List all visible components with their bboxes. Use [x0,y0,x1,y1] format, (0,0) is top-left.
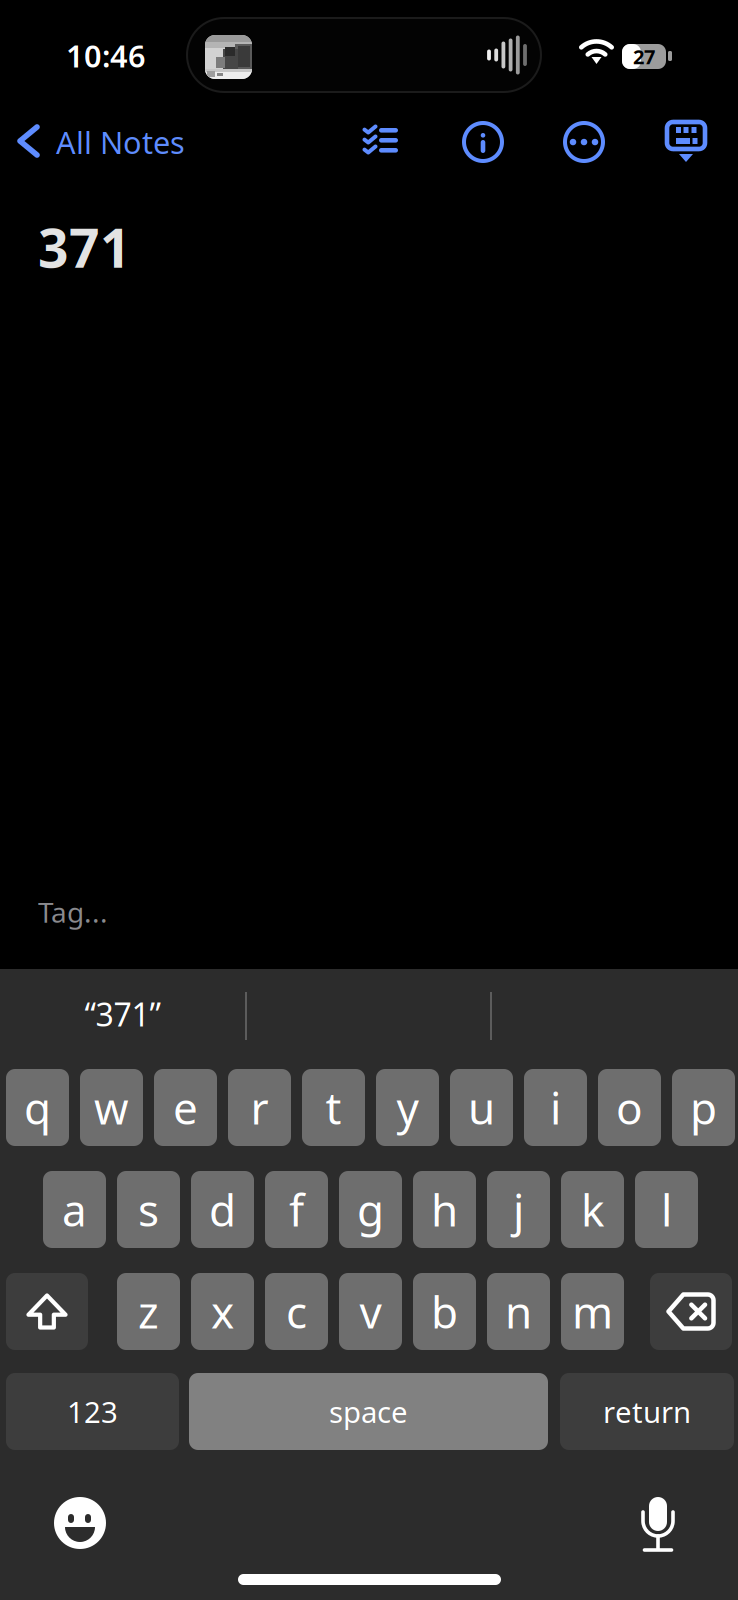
button[interactable]: More [552,110,616,174]
staticText: q [24,1078,51,1137]
staticText: a [62,1180,87,1239]
button[interactable]: b [413,1273,476,1350]
staticText: v [359,1282,381,1341]
button[interactable]: a [43,1171,106,1248]
staticText: 371 [38,212,131,282]
button[interactable]: n [487,1273,550,1350]
button[interactable]: h [413,1171,476,1248]
staticText: m [572,1282,613,1341]
staticText: s [138,1180,159,1239]
button[interactable]: i [524,1069,587,1146]
button[interactable]: w [80,1069,143,1146]
button[interactable]: “371” [0,974,245,1054]
staticText: Tag... [38,893,108,931]
staticText: j [513,1180,524,1239]
button[interactable]: Checklist [349,100,413,180]
staticText: d [209,1180,236,1239]
button[interactable]: l [635,1171,698,1248]
button[interactable]: Dictation [625,1491,689,1555]
staticText: 27 [633,43,655,70]
button[interactable]: Hide keyboard [654,110,718,174]
button[interactable]: e [154,1069,217,1146]
button[interactable]: k [561,1171,624,1248]
staticText: k [581,1180,604,1239]
button[interactable]: Space [189,1373,548,1450]
button[interactable]: o [598,1069,661,1146]
button[interactable]: v [339,1273,402,1350]
staticText: h [431,1180,458,1239]
staticText: p [690,1078,717,1137]
staticText: f [289,1180,304,1239]
button[interactable]: Emoji [48,1491,112,1555]
button[interactable]: q [6,1069,69,1146]
button[interactable]: All Notes [19,106,219,176]
button[interactable]: Shift [6,1273,88,1350]
button[interactable]: p [672,1069,735,1146]
button[interactable]: t [302,1069,365,1146]
button[interactable]: Tag... [0,888,738,936]
staticText: z [138,1282,159,1341]
staticText: l [661,1180,672,1239]
staticText: g [357,1180,384,1239]
staticText: return [603,1392,691,1431]
staticText: y [396,1078,418,1137]
staticText: r [250,1078,268,1137]
button[interactable]: z [117,1273,180,1350]
staticText: i [550,1078,561,1137]
button[interactable]: m [561,1273,624,1350]
button[interactable]: j [487,1171,550,1248]
staticText: t [325,1078,341,1137]
staticText: o [616,1078,643,1137]
staticText: w [94,1078,129,1137]
staticText: space [329,1392,408,1431]
button[interactable]: d [191,1171,254,1248]
staticText: u [468,1078,495,1137]
staticText: 123 [67,1392,118,1431]
staticText: 10:46 [66,35,146,76]
staticText: x [211,1282,234,1341]
button[interactable]: g [339,1171,402,1248]
button[interactable]: f [265,1171,328,1248]
button[interactable]: r [228,1069,291,1146]
button[interactable]: Note [0,206,738,906]
button[interactable]: Return [560,1373,734,1450]
staticText: n [505,1282,532,1341]
staticText: All Notes [56,122,185,162]
button[interactable]: Numbers [6,1373,179,1450]
staticText: “371” [84,993,160,1035]
staticText: c [286,1282,307,1341]
button[interactable]: x [191,1273,254,1350]
staticText: e [173,1078,198,1137]
button[interactable]: c [265,1273,328,1350]
button[interactable]: u [450,1069,513,1146]
button[interactable]: Info [451,110,515,174]
button[interactable]: Delete [650,1273,732,1350]
staticText: b [431,1282,458,1341]
button[interactable]: y [376,1069,439,1146]
button[interactable]: s [117,1171,180,1248]
